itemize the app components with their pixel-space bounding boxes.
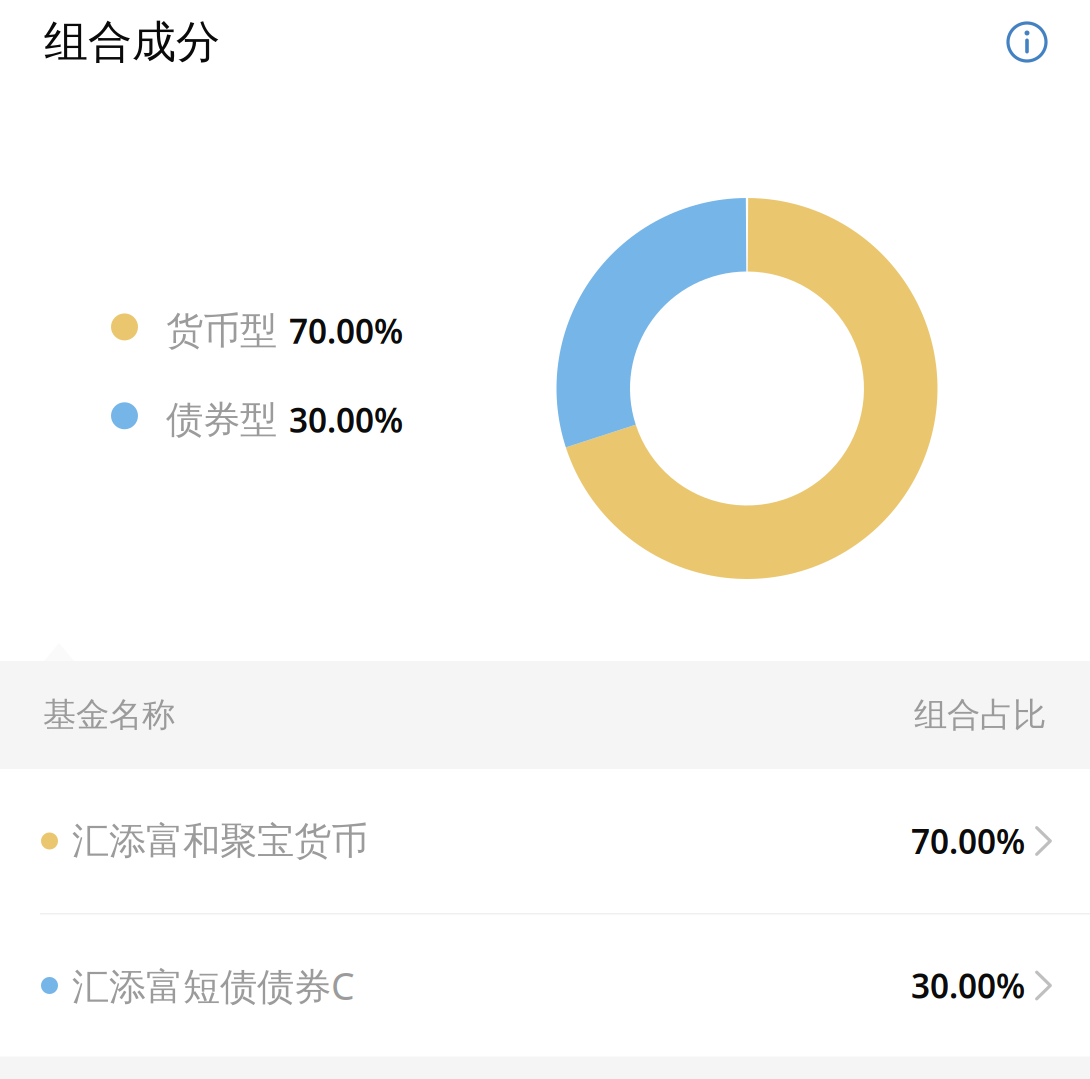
staticText: 30.00% [289,398,403,442]
button[interactable]: Info [1001,16,1053,68]
staticText: 汇添富短债债券C [72,961,355,1010]
staticText: 组合成分 [44,15,220,69]
button[interactable]: 汇添富短债债券C [0,914,1090,1056]
staticText: 债券型 [166,397,277,443]
staticText: 70.00% [289,309,403,353]
staticText: 30.00% [911,963,1025,1008]
button[interactable]: 汇添富和聚宝货币 [0,769,1090,913]
staticText: 基金名称 [43,694,175,735]
staticText: 汇添富和聚宝货币 [72,818,368,864]
staticText: 组合占比 [914,694,1046,735]
staticText: 70.00% [911,819,1025,863]
staticText: 货币型 [166,308,277,354]
